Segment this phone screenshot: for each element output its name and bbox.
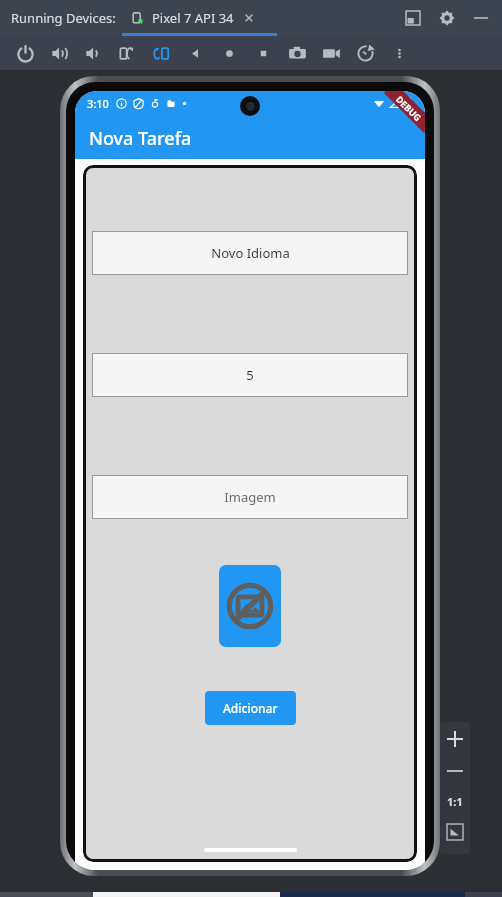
staticText: Imagem — [224, 488, 276, 506]
button[interactable]: Imagem — [92, 475, 408, 519]
button[interactable]: Record screen — [314, 36, 348, 70]
button[interactable]: Screenshot — [280, 36, 314, 70]
button[interactable]: Settings — [436, 7, 458, 29]
button[interactable]: 5 — [92, 353, 408, 397]
staticText: Adicionar — [223, 700, 278, 716]
button[interactable]: Adicionar — [205, 691, 296, 725]
button[interactable]: Volume up — [42, 36, 76, 70]
button[interactable]: Layout — [402, 7, 424, 29]
staticText: Nova Tarefa — [89, 126, 192, 151]
button[interactable]: Pixel 7 API 34 — [130, 9, 256, 27]
staticText: 3:10 — [87, 96, 109, 111]
staticText: Pixel 7 API 34 — [152, 9, 234, 27]
staticText: Running Devices: — [11, 9, 116, 27]
button[interactable]: Zoom in — [440, 722, 470, 756]
button[interactable]: 1:1 — [440, 786, 470, 816]
button[interactable]: Imagem selecionada — [219, 565, 281, 647]
button[interactable]: Fit to screen — [440, 816, 470, 848]
button[interactable]: Novo Idioma — [92, 231, 408, 275]
staticText: Novo Idioma — [211, 244, 290, 262]
button[interactable]: Rotate right — [144, 36, 178, 70]
button[interactable]: Minimize — [470, 7, 492, 29]
button[interactable]: Zoom out — [440, 756, 470, 786]
staticText: 1:1 — [447, 794, 463, 809]
button[interactable]: Rotate left — [110, 36, 144, 70]
button[interactable]: Close tab — [242, 11, 256, 25]
button[interactable]: Overview — [246, 36, 280, 70]
button[interactable]: Back — [178, 36, 212, 70]
button[interactable]: Home — [212, 36, 246, 70]
button[interactable]: Power — [8, 36, 42, 70]
button[interactable]: More — [382, 36, 416, 70]
staticText: DEBUG — [394, 93, 424, 123]
button[interactable]: Volume down — [76, 36, 110, 70]
button[interactable]: Reset — [348, 36, 382, 70]
staticText: 5 — [246, 366, 254, 384]
